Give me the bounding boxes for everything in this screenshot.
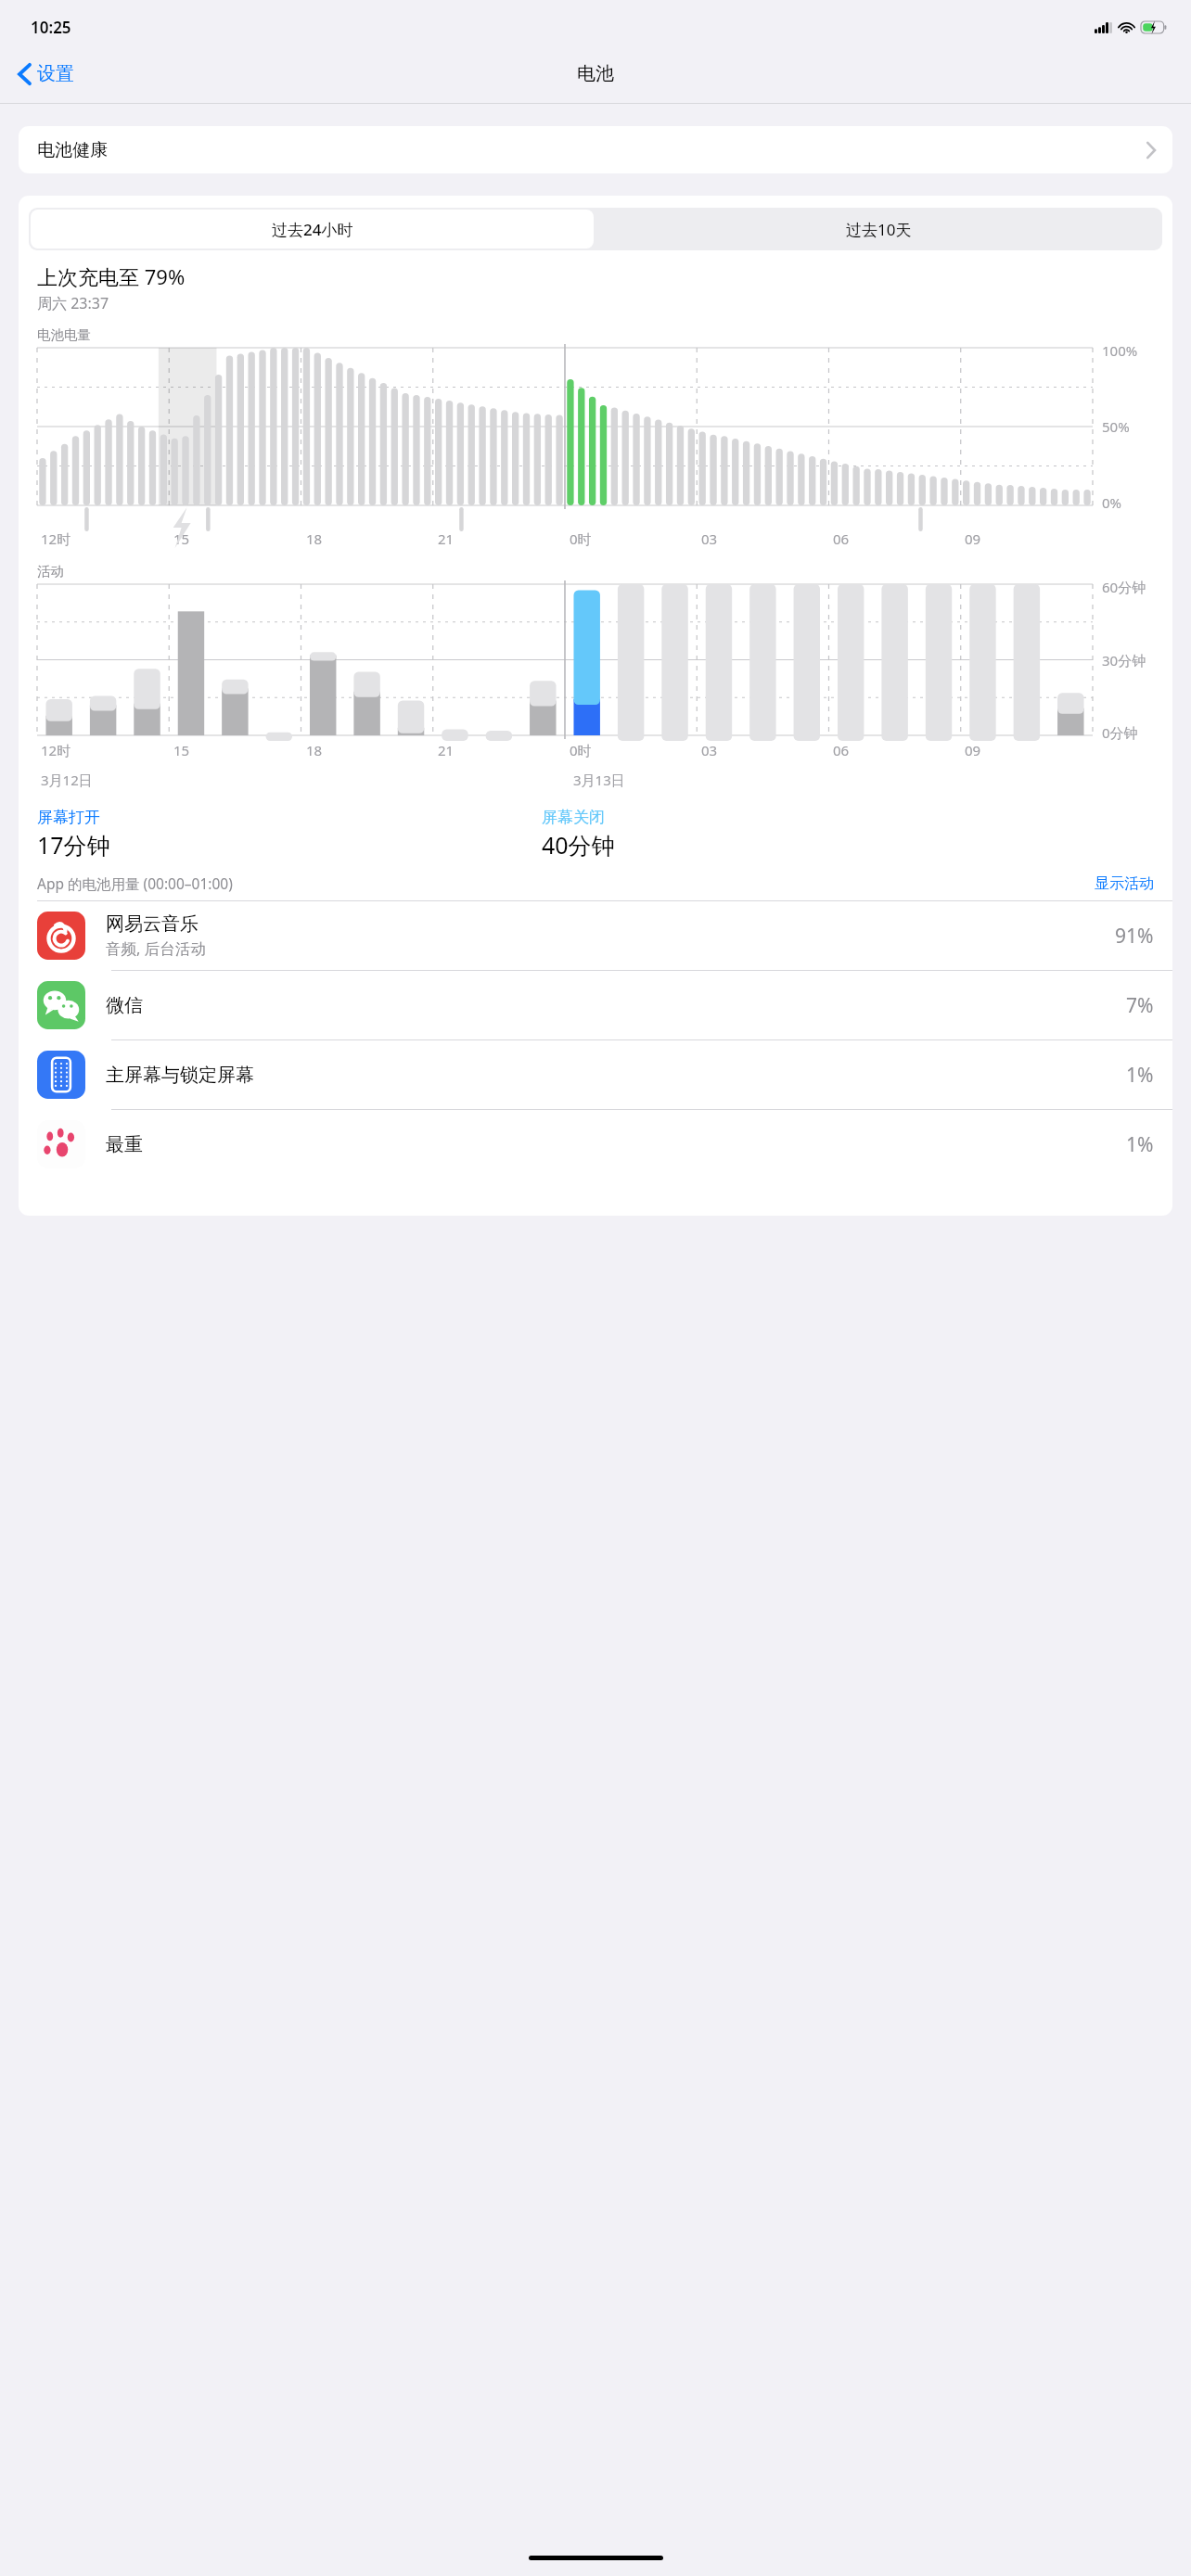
staticText: 12时 xyxy=(41,529,71,548)
button[interactable]: 主屏幕与锁定屏幕 xyxy=(19,1040,1172,1109)
staticText: 屏幕打开 xyxy=(37,808,100,827)
staticText: 3月12日 xyxy=(41,771,93,789)
button[interactable]: 过去10天 xyxy=(595,208,1162,250)
button[interactable]: 显示活动 xyxy=(1095,874,1154,893)
staticText: 最重 xyxy=(106,1133,143,1156)
staticText: 06 xyxy=(833,741,850,759)
button[interactable]: 最重 xyxy=(19,1110,1172,1179)
staticText: 100% xyxy=(1102,341,1138,360)
staticText: 09 xyxy=(965,741,981,759)
staticText: 21 xyxy=(438,741,455,759)
staticText: 1% xyxy=(1126,1062,1154,1089)
staticText: 18 xyxy=(306,529,323,548)
button[interactable]: 网易云音乐 xyxy=(19,901,1172,970)
staticText: 18 xyxy=(306,741,323,759)
staticText: 0时 xyxy=(570,529,592,548)
staticText: 屏幕关闭 xyxy=(542,808,605,827)
staticText: 上次充电至 79% xyxy=(37,262,186,290)
staticText: 30分钟 xyxy=(1102,651,1146,670)
staticText: 活动 xyxy=(37,563,64,580)
staticText: 过去24小时 xyxy=(272,219,353,240)
staticText: 7% xyxy=(1126,992,1154,1019)
staticText: 电池 xyxy=(577,62,614,85)
staticText: 0时 xyxy=(570,741,592,759)
staticText: 06 xyxy=(833,529,850,548)
staticText: 音频, 后台活动 xyxy=(106,937,206,959)
staticText: 显示活动 xyxy=(1095,874,1154,893)
staticText: 10:25 xyxy=(31,17,71,38)
staticText: 设置 xyxy=(37,62,74,85)
staticText: 12时 xyxy=(41,741,71,759)
staticText: 周六 23:37 xyxy=(37,293,109,313)
staticText: 03 xyxy=(701,529,718,548)
button[interactable]: 微信 xyxy=(19,971,1172,1039)
staticText: 3月13日 xyxy=(573,771,625,789)
staticText: 15 xyxy=(173,741,190,759)
staticText: 15 xyxy=(173,529,190,548)
staticText: 主屏幕与锁定屏幕 xyxy=(106,1064,254,1087)
staticText: 电池健康 xyxy=(37,139,108,161)
staticText: 0% xyxy=(1102,493,1122,512)
staticText: 微信 xyxy=(106,994,143,1017)
button[interactable]: 设置 xyxy=(0,58,85,89)
staticText: 60分钟 xyxy=(1102,578,1146,596)
staticText: 1% xyxy=(1126,1131,1154,1158)
staticText: 过去10天 xyxy=(846,219,912,240)
staticText: 网易云音乐 xyxy=(106,912,198,936)
staticText: 40分钟 xyxy=(542,829,615,861)
staticText: 09 xyxy=(965,529,981,548)
staticText: 21 xyxy=(438,529,455,548)
button[interactable]: 电池健康 xyxy=(19,126,1172,173)
staticText: 91% xyxy=(1115,923,1154,950)
button[interactable]: 过去24小时 xyxy=(31,210,594,249)
staticText: 电池电量 xyxy=(37,326,91,343)
staticText: 17分钟 xyxy=(37,829,110,861)
staticText: 0分钟 xyxy=(1102,723,1138,742)
staticText: 50% xyxy=(1102,417,1130,436)
staticText: App 的电池用量 (00:00–01:00) xyxy=(37,874,233,893)
staticText: 03 xyxy=(701,741,718,759)
